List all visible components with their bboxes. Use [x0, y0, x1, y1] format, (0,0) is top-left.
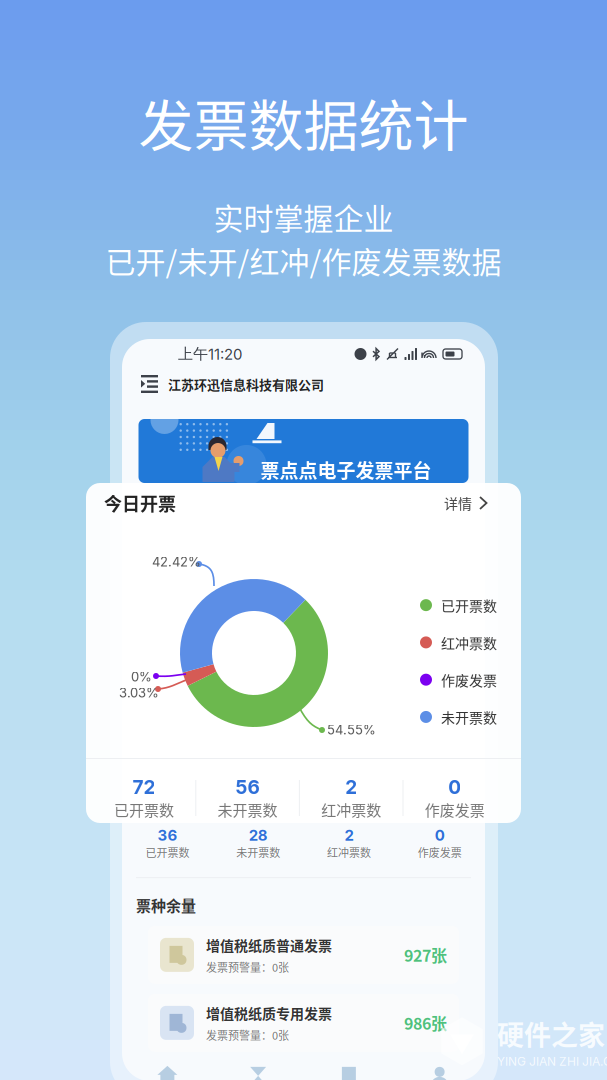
staticText: 红冲票数: [321, 799, 381, 820]
staticText: 已开票数: [145, 844, 189, 860]
staticText: 作废发票: [425, 799, 485, 820]
staticText: 3.03%: [119, 685, 159, 701]
staticText: 详情: [444, 493, 472, 513]
button[interactable]: 今日开票: [86, 481, 521, 525]
staticText: 发票数据统计: [138, 82, 468, 162]
staticText: 票点点电子发票平台: [260, 456, 431, 483]
staticText: 0%: [131, 669, 152, 685]
staticText: 增值税纸质专用发票: [206, 1003, 332, 1023]
staticText: 56: [236, 776, 260, 799]
staticText: 增值税纸质普通发票: [206, 935, 332, 955]
staticText: 42.42%: [152, 554, 201, 570]
staticText: 2: [344, 826, 353, 844]
staticText: 2: [345, 776, 357, 799]
staticText: 未开票数: [236, 844, 280, 860]
staticText: 0: [435, 826, 445, 844]
staticText: 54.55%: [327, 722, 376, 738]
staticText: 票种余量: [136, 894, 196, 916]
staticText: 36: [157, 826, 177, 844]
staticText: 实时掌握企业: [213, 195, 393, 238]
staticText: 已开票数: [114, 799, 174, 820]
staticText: 硬件之家: [497, 1014, 605, 1053]
staticText: 未开票数: [218, 799, 278, 820]
staticText: 红冲票数: [327, 844, 371, 860]
staticText: 72: [132, 776, 155, 799]
staticText: 986张: [404, 1011, 447, 1034]
staticText: 红冲票数: [441, 632, 497, 653]
staticText: 今日开票: [104, 490, 176, 516]
staticText: YING JIAN ZHI JIA.COM: [497, 1054, 607, 1069]
staticText: 江苏环迅信息科技有限公司: [168, 375, 324, 393]
staticText: 28: [249, 826, 268, 844]
staticText: 已开票数: [441, 595, 497, 615]
staticText: 未开票数: [441, 707, 497, 727]
staticText: 927张: [404, 943, 447, 966]
staticText: 作废发票: [418, 844, 462, 860]
staticText: 上午11:20: [178, 345, 242, 363]
staticText: 发票预警量：0张: [206, 959, 289, 975]
staticText: 作废发票: [441, 669, 497, 690]
staticText: 发票预警量：0张: [206, 1027, 289, 1043]
staticText: 已开/未开/红冲/作废发票数据: [105, 238, 501, 282]
staticText: 0: [448, 776, 461, 799]
